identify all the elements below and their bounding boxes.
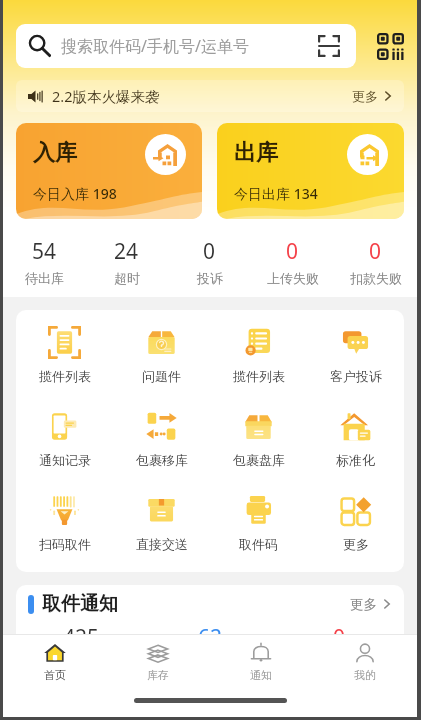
button[interactable]: 425 [16,623,146,672]
staticText: 问题件 [142,368,181,384]
button[interactable]: 标准化 [307,410,404,481]
staticText: 出库 [234,139,278,167]
button[interactable]: Scan [318,35,340,57]
button[interactable]: 揽件列表 [210,326,307,397]
button[interactable]: 包裹盘库 [210,410,307,481]
staticText: 通知记录 [39,452,91,468]
button[interactable]: 出库 [217,123,404,219]
button[interactable]: 入库 [16,123,202,219]
button[interactable]: 0 [168,237,251,286]
staticText: 直接交送 [136,536,188,552]
staticText: 更多 [350,596,377,613]
staticText: 0 [286,237,299,266]
staticText: 通知失败 [314,656,366,672]
staticText: 上传失败 [267,270,319,286]
button[interactable]: 扫码取件 [16,494,113,565]
button[interactable]: 问题件 [113,326,210,397]
staticText: 搜索取件码/手机号/运单号 [61,35,249,57]
staticText: 0 [333,623,346,652]
button[interactable]: 24 [85,237,168,286]
button[interactable]: 54 [3,237,85,286]
button[interactable]: 取件通知 [16,585,404,623]
button[interactable]: 通知 [209,635,313,687]
button[interactable]: 0 [251,237,334,286]
staticText: 今日入库 198 [33,184,117,203]
staticText: 扫码取件 [39,536,91,552]
staticText: 我的 [354,668,376,682]
button[interactable]: 通知记录 [16,410,113,481]
button[interactable]: 取件码 [210,494,307,565]
staticText: 待通知 [62,656,101,672]
staticText: 24 [114,237,139,266]
staticText: 扣款失败 [350,270,402,286]
staticText: 取件通知 [42,592,118,616]
button[interactable]: 库存 [106,635,209,687]
button[interactable]: 0 [275,623,404,672]
staticText: 客户投诉 [330,368,382,384]
staticText: 首页 [44,668,66,682]
button[interactable]: 首页 [3,635,106,687]
staticText: 库存 [147,668,169,682]
button[interactable]: 62 [146,623,275,672]
staticText: 2.2版本火爆来袭 [52,86,160,106]
staticText: 更多 [343,536,369,552]
staticText: 425 [63,623,100,652]
staticText: 今日出库 134 [234,184,318,203]
staticText: 标准化 [336,452,375,468]
staticText: 0 [369,237,382,266]
staticText: 包裹移库 [136,452,188,468]
staticText: 更多 [352,88,378,104]
button[interactable]: 搜索取件码/手机号/运单号 [16,24,356,68]
staticText: 超时 [114,270,140,286]
button[interactable]: 揽件列表 [16,326,113,397]
button[interactable]: 0 [334,237,417,286]
button[interactable]: QR code [376,32,404,60]
button[interactable]: 2.2版本火爆来袭 [16,80,404,112]
staticText: 待出库 [25,270,64,286]
button[interactable]: 直接交送 [113,494,210,565]
staticText: 通知 [250,668,272,682]
staticText: 取件码 [239,536,278,552]
staticText: 54 [32,237,57,266]
button[interactable]: 更多 [307,494,404,565]
staticText: 投诉 [197,270,223,286]
staticText: 揽件列表 [39,368,91,384]
button[interactable]: 包裹移库 [113,410,210,481]
staticText: 入库 [33,139,77,167]
button[interactable]: 客户投诉 [307,326,404,397]
staticText: 62 [198,623,223,652]
staticText: 包裹盘库 [233,452,285,468]
staticText: 0 [203,237,216,266]
staticText: 揽件列表 [233,368,285,384]
button[interactable]: 我的 [313,635,417,687]
